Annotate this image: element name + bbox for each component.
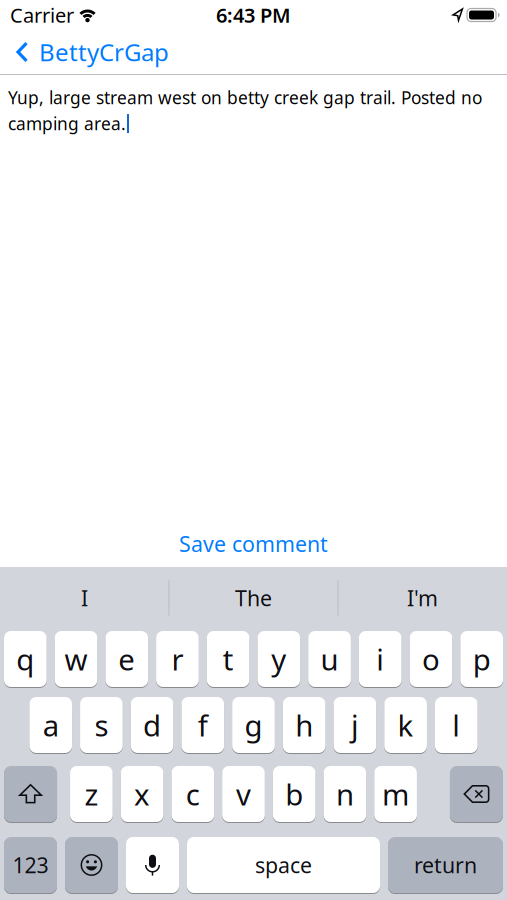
button[interactable]: BettyCrGap xyxy=(0,36,169,68)
staticText: I xyxy=(81,584,88,612)
staticText: k xyxy=(398,705,414,744)
button[interactable]: u xyxy=(308,631,351,687)
staticText: w xyxy=(65,639,88,678)
button[interactable] xyxy=(450,766,503,822)
staticText: camping area. xyxy=(8,112,126,135)
staticText: z xyxy=(84,774,98,813)
staticText: e xyxy=(118,639,135,678)
button[interactable]: 123 xyxy=(4,837,57,893)
staticText: y xyxy=(271,639,286,678)
staticText: Carrier xyxy=(10,2,74,28)
staticText: q xyxy=(16,639,34,678)
staticText: I'm xyxy=(407,584,438,612)
staticText: m xyxy=(382,774,409,813)
button[interactable]: v xyxy=(222,766,265,822)
button[interactable]: z xyxy=(70,766,113,822)
button[interactable]: t xyxy=(207,631,249,687)
button[interactable]: k xyxy=(384,697,427,753)
staticText: t xyxy=(223,639,234,678)
staticText: return xyxy=(414,851,477,879)
button[interactable]: c xyxy=(171,766,214,822)
staticText: BettyCrGap xyxy=(39,36,169,68)
staticText: f xyxy=(198,705,208,744)
staticText: i xyxy=(376,639,384,678)
button[interactable]: Save comment xyxy=(179,530,328,558)
staticText: l xyxy=(452,705,460,744)
staticText: Yup, large stream west on betty creek ga… xyxy=(8,86,482,109)
button[interactable]: p xyxy=(460,631,503,687)
button[interactable]: d xyxy=(131,697,173,753)
button[interactable]: m xyxy=(374,766,417,822)
staticText: b xyxy=(285,774,303,813)
button[interactable]: e xyxy=(105,631,148,687)
button[interactable]: I'm xyxy=(338,569,506,627)
button[interactable]: w xyxy=(55,631,97,687)
staticText: u xyxy=(321,639,339,678)
staticText: 123 xyxy=(12,851,48,879)
button[interactable]: x xyxy=(121,766,163,822)
button[interactable]: return xyxy=(388,837,503,893)
button[interactable]: a xyxy=(29,697,72,753)
button[interactable]: b xyxy=(273,766,316,822)
staticText: j xyxy=(351,705,359,744)
button[interactable]: f xyxy=(181,697,224,753)
staticText: s xyxy=(94,705,108,744)
button[interactable]: g xyxy=(232,697,275,753)
staticText: a xyxy=(43,705,59,744)
staticText: d xyxy=(143,705,161,744)
staticText: space xyxy=(255,851,312,879)
staticText: v xyxy=(236,774,251,813)
button[interactable]: h xyxy=(283,697,326,753)
button[interactable]: y xyxy=(257,631,300,687)
staticText: c xyxy=(186,774,200,813)
button[interactable]: j xyxy=(334,697,376,753)
staticText: p xyxy=(473,639,491,678)
button[interactable]: i xyxy=(359,631,402,687)
button[interactable] xyxy=(4,766,57,822)
button[interactable]: s xyxy=(80,697,123,753)
button[interactable]: space xyxy=(187,837,380,893)
button[interactable] xyxy=(126,837,179,893)
button[interactable]: The xyxy=(169,569,337,627)
button[interactable]: n xyxy=(324,766,366,822)
button[interactable]: r xyxy=(156,631,199,687)
button[interactable]: q xyxy=(4,631,47,687)
staticText: r xyxy=(171,639,183,678)
button[interactable] xyxy=(65,837,118,893)
staticText: 6:43 PM xyxy=(216,2,291,28)
staticText: The xyxy=(235,584,272,612)
staticText: n xyxy=(336,774,354,813)
staticText: g xyxy=(244,705,262,744)
staticText: x xyxy=(134,774,150,813)
staticText: Save comment xyxy=(179,530,328,558)
button[interactable]: l xyxy=(435,697,478,753)
staticText: o xyxy=(422,639,440,678)
button[interactable]: I xyxy=(0,569,168,627)
staticText: h xyxy=(295,705,313,744)
button[interactable]: o xyxy=(410,631,452,687)
